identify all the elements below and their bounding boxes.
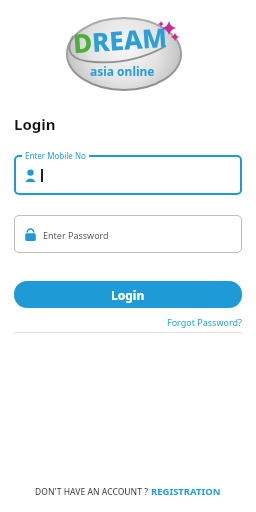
staticText: Login <box>14 114 56 134</box>
button[interactable]: Login <box>14 281 242 308</box>
button[interactable]: Enter Password <box>14 215 242 253</box>
staticText: DREAM <box>72 19 168 60</box>
staticText: DON'T HAVE AN ACCOUNT ? <box>35 486 151 498</box>
staticText: Enter Password <box>43 229 109 241</box>
staticText: REGISTRATION <box>151 485 221 498</box>
button[interactable]: Forgot Password? <box>167 316 242 328</box>
staticText: Enter Mobile No <box>25 150 86 161</box>
button[interactable] <box>14 155 242 195</box>
button[interactable]: DON'T HAVE AN ACCOUNT ? <box>35 485 221 498</box>
staticText: asia online <box>90 63 155 79</box>
staticText: Login <box>111 287 145 303</box>
